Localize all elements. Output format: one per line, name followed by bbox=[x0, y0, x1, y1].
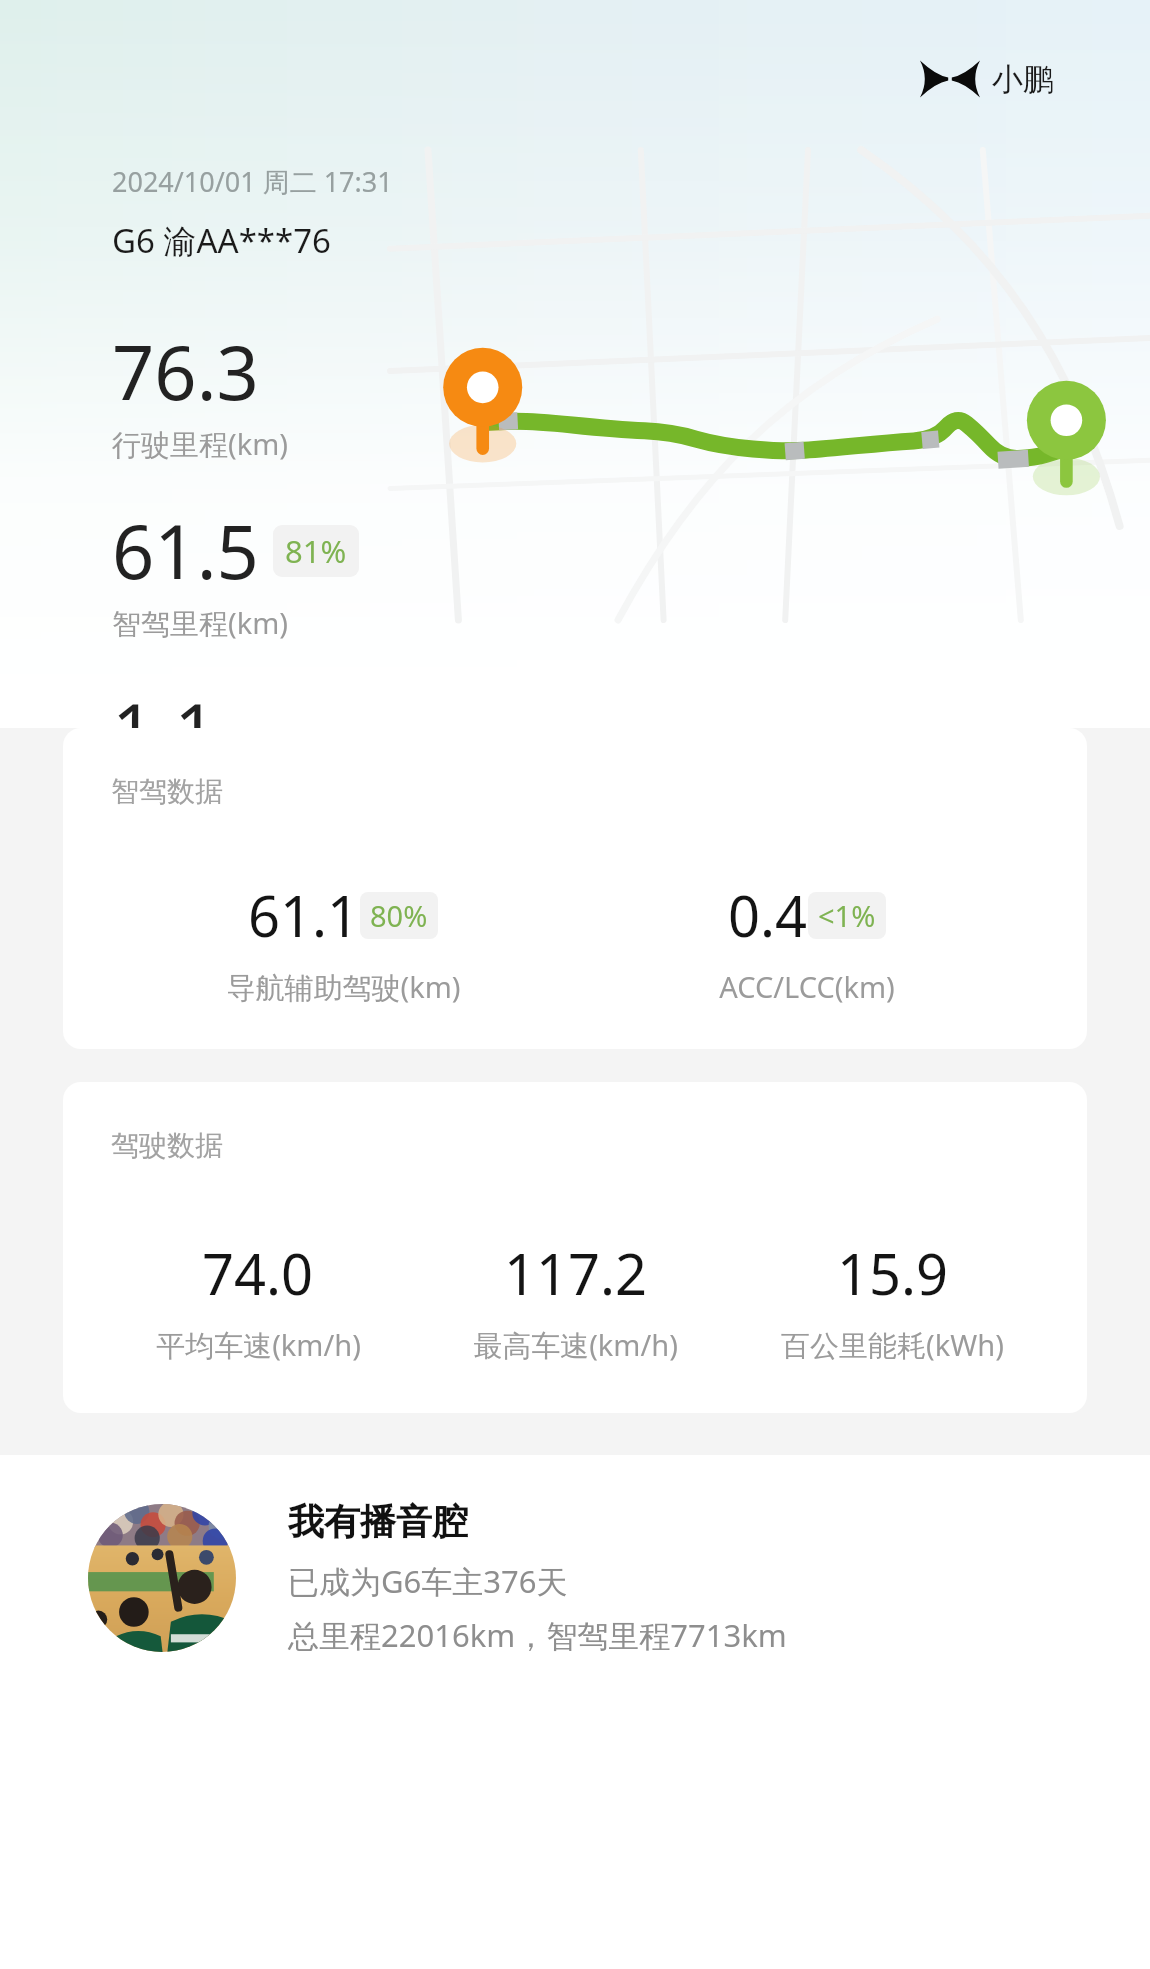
button[interactable]: 我有播音腔 bbox=[0, 1455, 1150, 1700]
staticText: 导航辅助驾驶(km) bbox=[226, 967, 461, 1007]
staticText: 74.0 bbox=[202, 1235, 314, 1311]
button[interactable]: 智驾数据 bbox=[63, 728, 1087, 1049]
staticText: 117.2 bbox=[504, 1235, 648, 1311]
staticText: 百公里能耗(kWh) bbox=[781, 1325, 1004, 1365]
staticText: 驾驶数据 bbox=[111, 1128, 223, 1163]
staticText: 已成为G6车主376天 bbox=[288, 1560, 568, 1602]
staticText: 智驾里程(km) bbox=[112, 603, 289, 643]
staticText: 小鹏 bbox=[992, 60, 1054, 99]
staticText: 81% bbox=[285, 530, 347, 572]
button[interactable]: 驾驶数据 bbox=[63, 1082, 1087, 1413]
staticText: <1% bbox=[818, 896, 876, 935]
staticText: 61.5 bbox=[112, 500, 259, 601]
staticText: ACC/LCC(km) bbox=[719, 967, 895, 1006]
staticText: 平均车速(km/h) bbox=[156, 1325, 361, 1365]
staticText: 行驶里程(km) bbox=[112, 424, 289, 464]
button[interactable]: XPeng 小鹏 bbox=[920, 58, 1054, 100]
staticText: 行程时长(h) bbox=[112, 782, 264, 822]
staticText: 1.1 bbox=[112, 679, 217, 780]
staticText: 80% bbox=[370, 896, 428, 935]
staticText: 2024/10/01 周二 17:31 bbox=[112, 163, 393, 200]
staticText: 76.3 bbox=[112, 321, 259, 422]
staticText: 我有播音腔 bbox=[288, 1499, 468, 1544]
staticText: G6 渝AA***76 bbox=[112, 218, 331, 263]
staticText: 61.1 bbox=[248, 877, 360, 953]
staticText: 智驾数据 bbox=[111, 774, 223, 809]
staticText: 0.4 bbox=[728, 877, 808, 953]
staticText: 最高车速(km/h) bbox=[473, 1325, 678, 1365]
staticText: 15.9 bbox=[837, 1235, 949, 1311]
staticText: 总里程22016km，智驾里程7713km bbox=[288, 1614, 787, 1656]
